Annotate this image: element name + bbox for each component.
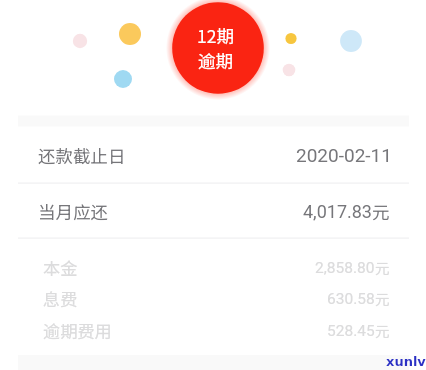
button[interactable]: 还款截止日	[0, 130, 426, 180]
staticText: 元	[375, 320, 390, 341]
staticText: 元	[375, 288, 390, 309]
staticText: xunlv	[386, 354, 426, 369]
staticText: 4,017.83	[303, 201, 372, 222]
staticText: 当月应还	[38, 199, 108, 224]
button[interactable]: 12期逾期状态	[172, 2, 264, 94]
staticText: 2,858.80	[315, 259, 375, 277]
staticText: 元	[375, 257, 390, 278]
staticText: 528.45	[327, 322, 375, 340]
staticText: 630.58	[327, 290, 375, 308]
button[interactable]: 逾期费用	[0, 315, 426, 345]
staticText: 息费	[43, 286, 78, 311]
button[interactable]: 息费	[0, 283, 426, 313]
staticText: 12期	[197, 23, 234, 48]
button[interactable]: 本金	[0, 252, 426, 282]
staticText: 2020-02-11	[296, 144, 392, 166]
staticText: 本金	[43, 255, 78, 280]
staticText: 元	[372, 199, 390, 224]
button[interactable]: 当月应还	[0, 186, 426, 236]
staticText: 逾期	[198, 48, 233, 73]
staticText: 逾期费用	[43, 318, 112, 343]
staticText: 还款截止日	[38, 143, 126, 168]
